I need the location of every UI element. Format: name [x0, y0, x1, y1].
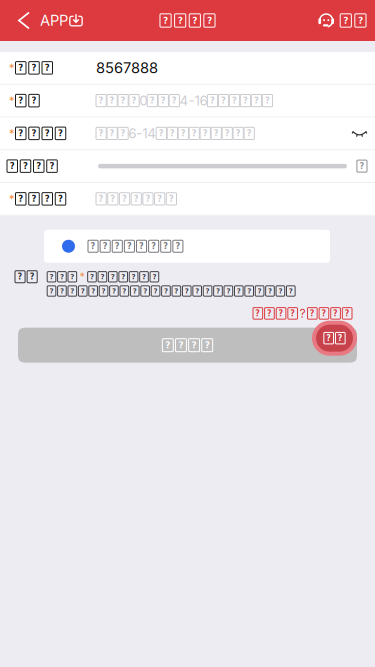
staticText: ?	[60, 287, 64, 295]
staticText: ?	[134, 194, 139, 204]
staticText: ?	[31, 96, 36, 106]
staticText: ?	[237, 287, 241, 295]
staticText: ?	[178, 15, 183, 26]
staticText: 6-14	[128, 125, 156, 141]
staticText: ?	[133, 287, 137, 295]
staticText: ?	[358, 15, 363, 26]
staticText: ?	[172, 96, 177, 105]
staticText: ?	[99, 194, 104, 204]
staticText: ?	[150, 96, 155, 105]
staticText: ?	[132, 273, 136, 281]
staticText: ?	[31, 63, 36, 73]
staticText: ?	[207, 15, 212, 26]
staticText: ?	[279, 309, 284, 318]
staticText: ?	[192, 340, 197, 350]
button[interactable]: ?	[312, 321, 357, 356]
staticText: *	[80, 271, 85, 283]
staticText: ?	[255, 309, 260, 318]
staticText: 4-16	[179, 92, 207, 109]
button[interactable]: ?	[44, 230, 330, 263]
staticText: ?	[216, 287, 220, 295]
staticText: ?	[132, 96, 137, 105]
staticText: ?	[161, 96, 166, 105]
staticText: ?	[203, 129, 208, 138]
staticText: ?	[174, 287, 178, 295]
staticText: ?	[345, 309, 350, 318]
staticText: ?	[247, 129, 252, 138]
staticText: ?	[178, 340, 183, 350]
staticText: ?	[247, 287, 251, 295]
staticText: ?	[31, 128, 36, 138]
staticText: ?	[221, 96, 226, 105]
staticText: ?	[110, 96, 115, 105]
staticText: ?	[112, 287, 116, 295]
staticText: *	[9, 61, 14, 74]
staticText: ?	[115, 241, 120, 251]
staticText: ?	[163, 15, 168, 26]
staticText: ?	[30, 272, 35, 281]
staticText: ?	[268, 287, 272, 295]
staticText: ?	[154, 287, 158, 295]
staticText: ?	[45, 128, 50, 138]
button[interactable]: ?	[253, 306, 352, 321]
staticText: ?	[258, 287, 262, 295]
staticText: ?	[60, 273, 64, 281]
staticText: ?	[338, 334, 343, 343]
staticText: ?	[122, 194, 127, 204]
staticText: ?	[18, 128, 23, 138]
staticText: ?	[18, 194, 23, 204]
button[interactable]: ?	[18, 328, 357, 363]
staticText: ?	[81, 287, 85, 295]
staticText: ?	[151, 241, 156, 251]
staticText: ?	[10, 161, 15, 171]
staticText: ?	[181, 129, 186, 138]
staticText: ?	[289, 287, 293, 295]
button[interactable]: Customer service	[317, 0, 375, 41]
staticText: ?	[254, 96, 259, 105]
staticText: *	[9, 94, 14, 107]
staticText: ?	[206, 287, 210, 295]
staticText: ?	[169, 194, 174, 204]
staticText: ?	[23, 161, 28, 171]
staticText: ?	[170, 129, 175, 138]
staticText: ?	[121, 273, 125, 281]
staticText: ?	[175, 241, 180, 251]
staticText: ?	[152, 273, 156, 281]
staticText: ?	[143, 287, 147, 295]
staticText: ?	[45, 194, 50, 204]
staticText: ?	[90, 241, 95, 251]
staticText: ?	[326, 334, 331, 343]
staticText: ?	[100, 273, 104, 281]
staticText: ?	[101, 287, 105, 295]
staticText: ?	[70, 287, 74, 295]
staticText: ?	[205, 340, 210, 350]
staticText: ?	[278, 287, 282, 295]
staticText: ?	[18, 96, 23, 106]
staticText: ?	[333, 309, 338, 318]
staticText: ?	[185, 287, 189, 295]
button[interactable]: APP	[0, 0, 91, 41]
staticText: ?	[17, 272, 22, 281]
staticText: ?	[91, 287, 95, 295]
staticText: ?	[359, 161, 364, 171]
staticText: ?	[243, 96, 248, 105]
staticText: ?	[49, 273, 53, 281]
staticText: ?	[225, 129, 230, 138]
staticText: ?	[142, 273, 146, 281]
staticText: APP	[40, 12, 68, 29]
staticText: ?	[110, 129, 115, 138]
staticText: ?	[290, 309, 295, 318]
staticText: ?	[58, 194, 63, 204]
staticText: ?	[195, 287, 199, 295]
staticText: ?	[321, 309, 326, 318]
staticText: ?	[145, 194, 150, 204]
staticText: ?	[49, 287, 53, 295]
staticText: ?	[122, 287, 126, 295]
staticText: ?	[121, 129, 126, 138]
staticText: ?	[36, 161, 41, 171]
staticText: ?	[103, 241, 108, 251]
staticText: ?	[99, 96, 104, 105]
staticText: ?	[267, 309, 272, 318]
staticText: ?	[210, 96, 215, 105]
staticText: ?	[164, 287, 168, 295]
